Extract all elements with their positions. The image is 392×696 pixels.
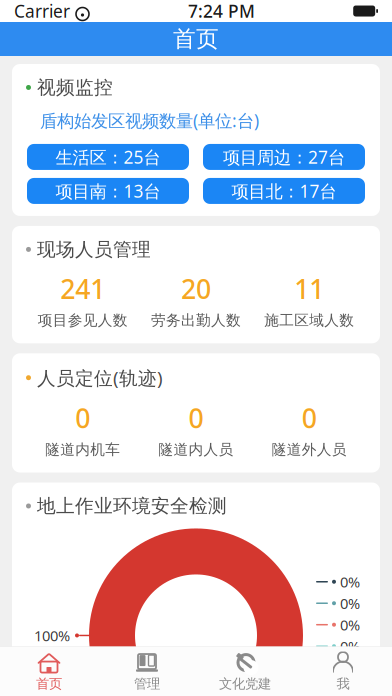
staticText: 项目北：17台 — [231, 179, 336, 202]
staticText: 管理 — [134, 676, 160, 692]
staticText: 隧道外人员 — [272, 440, 347, 458]
staticText: 生活区：25台 — [55, 145, 160, 168]
staticText: 我 — [336, 676, 349, 692]
staticText: 0% — [340, 679, 360, 696]
staticText: 视频监控 — [37, 76, 113, 99]
staticText: 文化党建 — [219, 676, 271, 692]
staticText: 首页 — [36, 676, 62, 692]
staticText: 0% — [340, 593, 360, 613]
staticText: 20 — [181, 271, 211, 306]
staticText: 0 — [75, 400, 90, 435]
staticText: 7:24 PM — [188, 0, 255, 22]
button[interactable]: 管理 — [98, 647, 196, 696]
staticText: 地上作业环境安全检测 — [37, 494, 227, 517]
staticText: 100% — [34, 626, 70, 645]
staticText: 劳务出勤人数 — [151, 311, 241, 329]
staticText: 施工区域人数 — [264, 311, 354, 329]
staticText: 11 — [294, 271, 324, 306]
staticText: 项目南：13台 — [55, 179, 160, 202]
staticText: 0 — [302, 400, 317, 435]
button[interactable]: 文化党建 — [196, 647, 294, 696]
staticText: 0% — [340, 572, 360, 591]
staticText: 项目周边：27台 — [223, 145, 345, 168]
staticText: 盾构始发区视频数量(单位:台) — [40, 109, 259, 132]
staticText: 0% — [340, 615, 360, 634]
button[interactable]: 生活区：25台 — [27, 144, 189, 170]
button[interactable]: 项目周边：27台 — [203, 144, 365, 170]
staticText: 隧道内机车 — [45, 440, 120, 458]
staticText: 0% — [340, 636, 360, 656]
button[interactable]: 首页 — [0, 647, 98, 696]
staticText: 项目参见人数 — [38, 311, 128, 329]
staticText: 0% — [340, 658, 360, 677]
staticText: 人员定位(轨迹) — [37, 365, 163, 390]
staticText: 0 — [188, 400, 203, 435]
staticText: 隧道内人员 — [158, 440, 233, 458]
staticText: Carrier — [14, 0, 70, 22]
button[interactable]: 我 — [294, 647, 392, 696]
staticText: 首页 — [173, 25, 219, 53]
button[interactable]: 项目北：17台 — [203, 178, 365, 204]
staticText: 现场人员管理 — [37, 238, 151, 261]
staticText: 241 — [60, 271, 105, 306]
button[interactable]: 项目南：13台 — [27, 178, 189, 204]
